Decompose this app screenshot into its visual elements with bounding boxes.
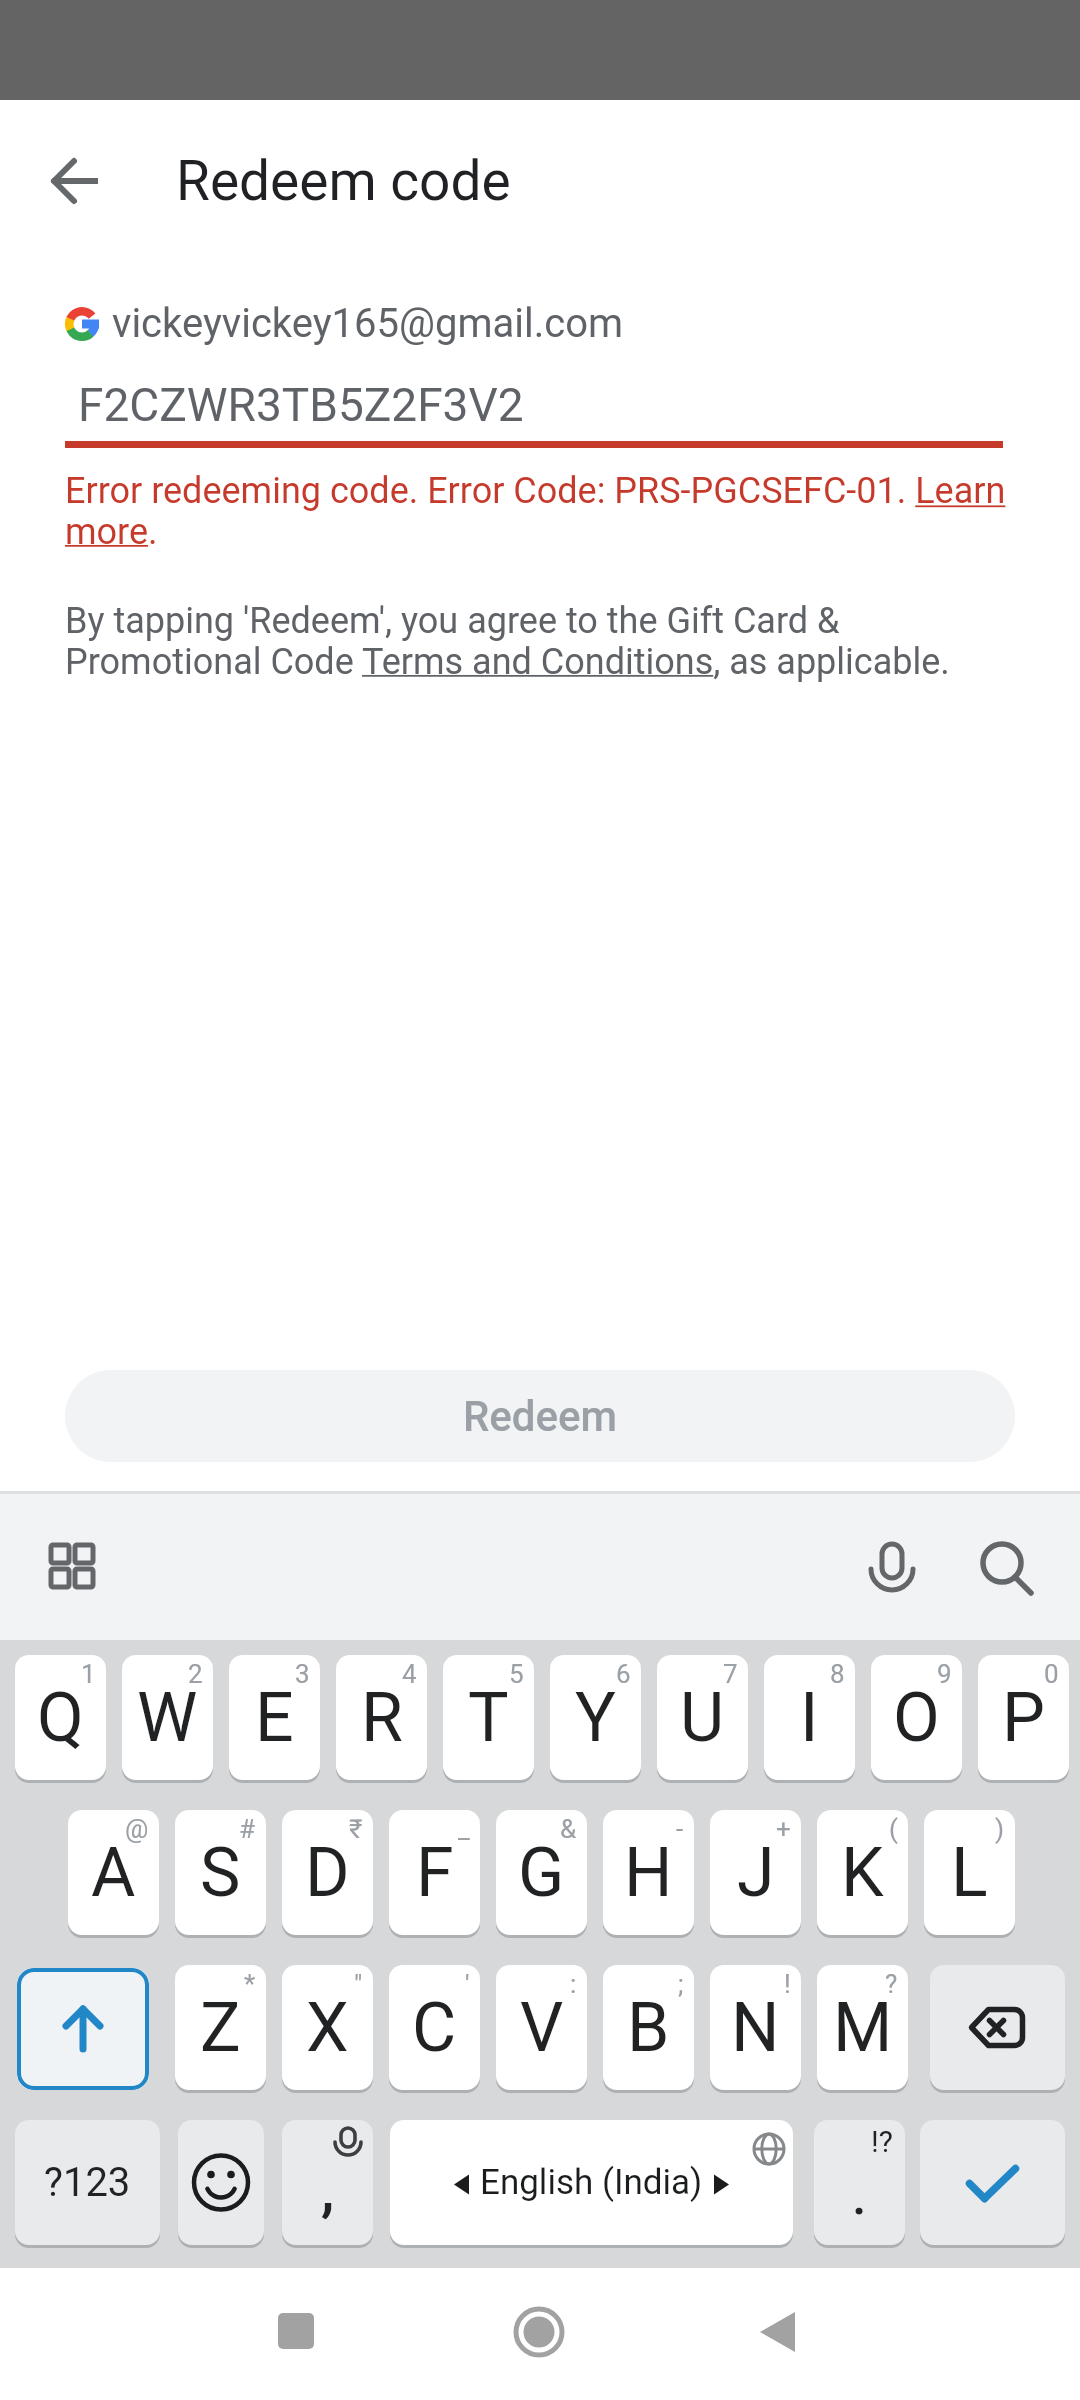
staticText: P: [1002, 1678, 1045, 1758]
staticText: 0: [1044, 1659, 1059, 1689]
button[interactable]: O: [871, 1655, 962, 1780]
button[interactable]: Z: [175, 1965, 266, 2090]
staticText: +: [776, 1814, 791, 1844]
staticText: By tapping 'Redeem', you agree to the Gi…: [65, 600, 950, 682]
staticText: 3: [295, 1659, 310, 1689]
button[interactable]: E: [229, 1655, 320, 1780]
staticText: @: [125, 1814, 149, 1844]
staticText: E: [255, 1678, 294, 1758]
button[interactable]: Redeem: [65, 1370, 1015, 1462]
staticText: English (India): [480, 2162, 703, 2203]
staticText: Y: [575, 1678, 616, 1758]
staticText: G: [518, 1833, 565, 1913]
button[interactable]: English (India): [390, 2120, 793, 2245]
button[interactable]: [968, 1532, 1040, 1604]
button[interactable]: [856, 1532, 928, 1604]
staticText: 7: [723, 1659, 738, 1689]
staticText: Error redeeming code. Error Code: PRS-PG…: [65, 470, 1006, 552]
button[interactable]: [510, 2303, 568, 2361]
staticText: :: [570, 1969, 577, 1999]
button[interactable]: Y: [550, 1655, 641, 1780]
button[interactable]: I: [764, 1655, 855, 1780]
button[interactable]: G: [496, 1810, 587, 1935]
button[interactable]: ,: [282, 2120, 373, 2245]
staticText: Z: [200, 1988, 241, 2068]
staticText: &: [560, 1814, 577, 1844]
button[interactable]: B: [603, 1965, 694, 2090]
staticText: F: [416, 1833, 454, 1913]
staticText: !: [784, 1969, 791, 1999]
staticText: D: [305, 1833, 350, 1913]
button[interactable]: [17, 1968, 149, 2090]
staticText: M: [833, 1988, 893, 2068]
button[interactable]: X: [282, 1965, 373, 2090]
staticText: ): [995, 1814, 1005, 1844]
staticText: ;: [678, 1969, 684, 1999]
staticText: S: [200, 1833, 241, 1913]
staticText: J: [737, 1833, 775, 1913]
staticText: ₹: [349, 1814, 363, 1844]
button[interactable]: [920, 2120, 1065, 2245]
button[interactable]: [178, 2120, 264, 2245]
button[interactable]: L: [924, 1810, 1015, 1935]
staticText: Redeem code: [176, 149, 511, 213]
button[interactable]: [65, 300, 1015, 352]
staticText: B: [627, 1988, 670, 2068]
staticText: ,: [321, 2154, 335, 2224]
staticText: 8: [830, 1659, 845, 1689]
button[interactable]: H: [603, 1810, 694, 1935]
staticText: Redeem: [463, 1392, 618, 1441]
staticText: H: [624, 1833, 673, 1913]
button[interactable]: Q: [15, 1655, 106, 1780]
staticText: 1: [81, 1659, 96, 1689]
button[interactable]: F: [389, 1810, 480, 1935]
staticText: 9: [937, 1659, 952, 1689]
staticText: -: [676, 1814, 684, 1844]
staticText: .: [852, 2166, 867, 2227]
button[interactable]: K: [817, 1810, 908, 1935]
staticText: ?123: [44, 2159, 131, 2206]
button[interactable]: D: [282, 1810, 373, 1935]
button[interactable]: [278, 2313, 314, 2349]
button[interactable]: R: [336, 1655, 427, 1780]
button[interactable]: [36, 1530, 108, 1606]
staticText: W: [137, 1678, 198, 1758]
button[interactable]: V: [496, 1965, 587, 2090]
staticText: X: [306, 1988, 349, 2068]
staticText: R: [361, 1678, 403, 1758]
staticText: L: [951, 1833, 988, 1913]
button[interactable]: S: [175, 1810, 266, 1935]
staticText: 5: [509, 1659, 524, 1689]
button[interactable]: ?123: [15, 2120, 160, 2245]
staticText: 2: [188, 1659, 203, 1689]
staticText: 4: [402, 1659, 417, 1689]
staticText: K: [841, 1833, 884, 1913]
button[interactable]: T: [443, 1655, 534, 1780]
button[interactable]: [755, 2308, 803, 2356]
staticText: U: [680, 1678, 725, 1758]
staticText: !?: [871, 2124, 893, 2159]
button[interactable]: U: [657, 1655, 748, 1780]
staticText: Q: [37, 1678, 84, 1758]
staticText: 6: [616, 1659, 631, 1689]
staticText: ": [354, 1969, 363, 1999]
button[interactable]: N: [710, 1965, 801, 2090]
button[interactable]: [930, 1965, 1065, 2090]
staticText: C: [412, 1988, 457, 2068]
button[interactable]: C: [389, 1965, 480, 2090]
button[interactable]: P: [978, 1655, 1069, 1780]
staticText: F2CZWR3TB5Z2F3V2: [78, 378, 524, 432]
staticText: O: [893, 1678, 940, 1758]
button[interactable]: J: [710, 1810, 801, 1935]
button[interactable]: A: [68, 1810, 159, 1935]
button[interactable]: M: [817, 1965, 908, 2090]
staticText: I: [800, 1678, 819, 1758]
button[interactable]: [40, 145, 112, 217]
staticText: ?: [885, 1969, 898, 1999]
button[interactable]: W: [122, 1655, 213, 1780]
staticText: A: [91, 1833, 136, 1913]
staticText: N: [731, 1988, 780, 2068]
button[interactable]: .: [814, 2120, 905, 2245]
staticText: vickeyvickey165@gmail.com: [112, 300, 624, 347]
staticText: #: [239, 1814, 256, 1844]
